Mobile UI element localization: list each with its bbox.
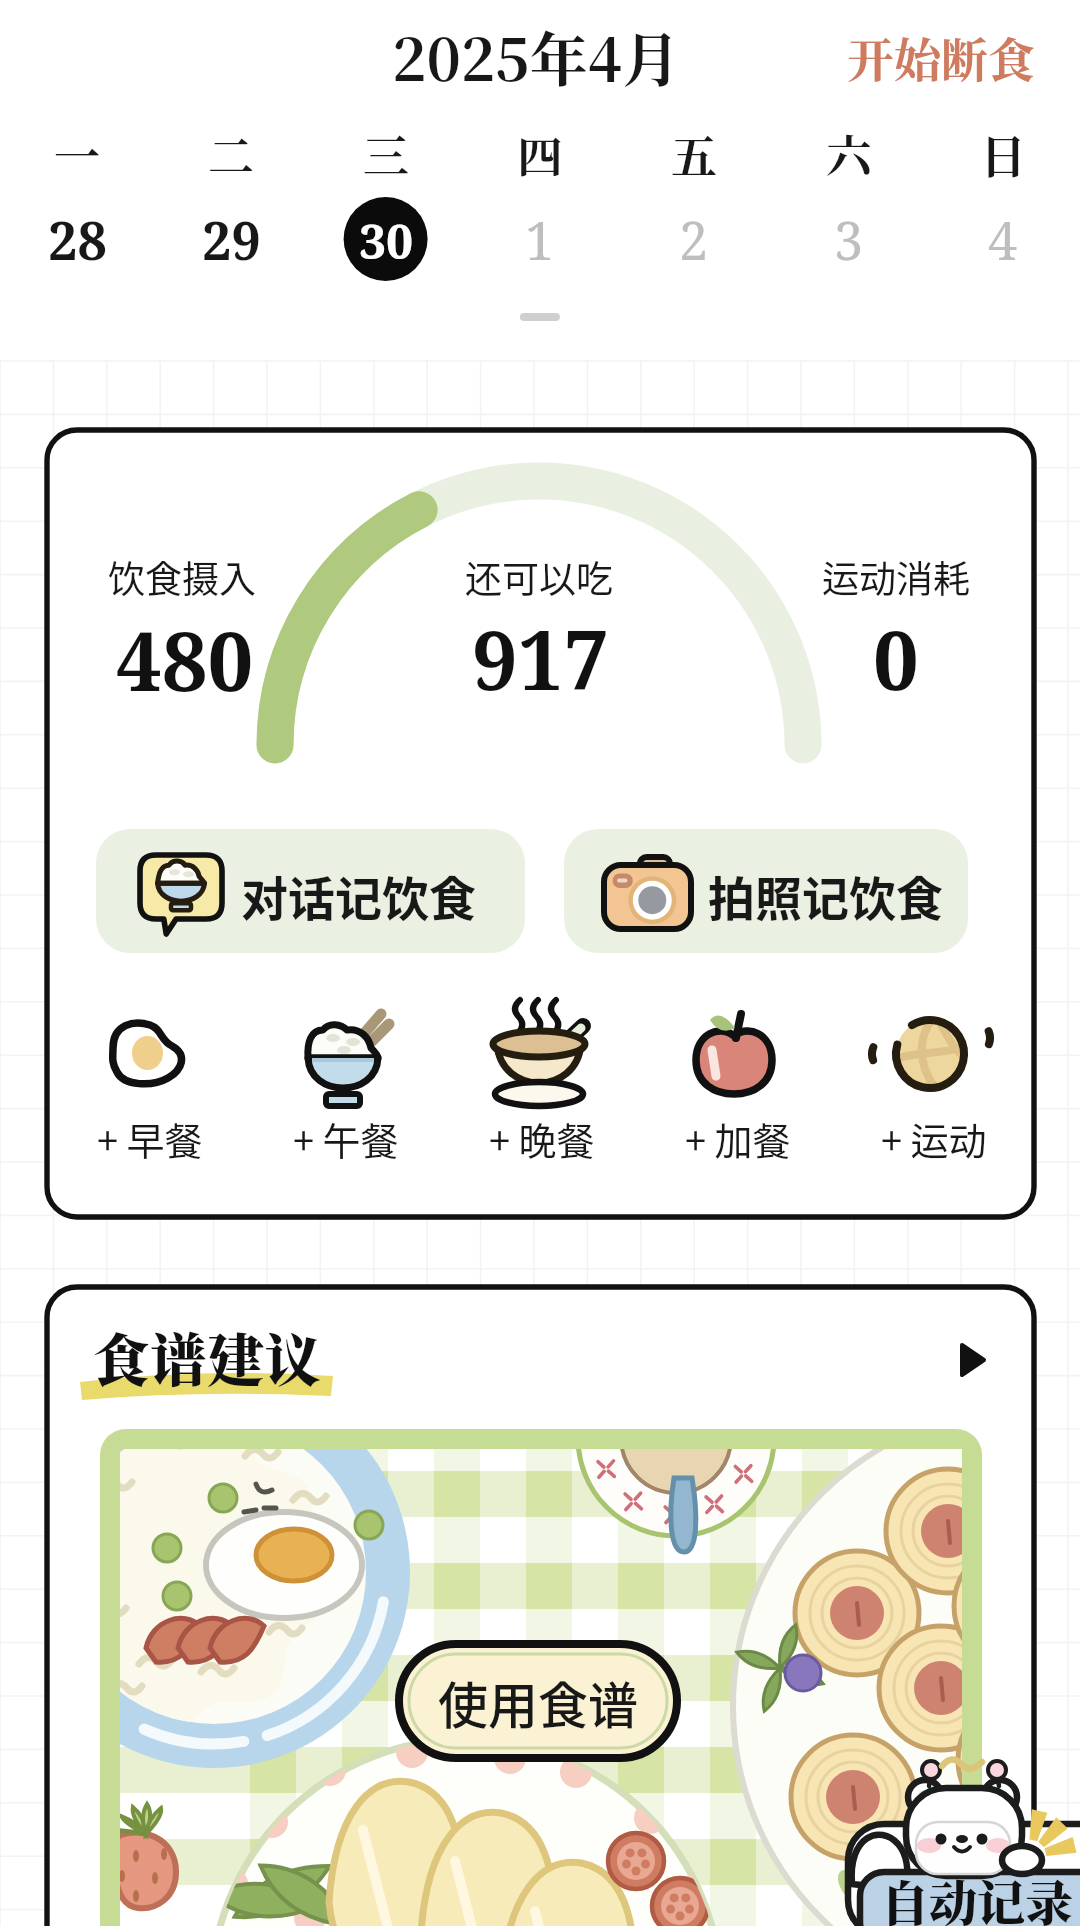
button[interactable]: 4 [953, 190, 1053, 290]
staticText: 五 [671, 120, 717, 186]
staticText: 2 [679, 204, 709, 275]
staticText: 0 [873, 603, 919, 713]
button[interactable]: 3 [799, 190, 899, 290]
button[interactable]: 28 [27, 190, 127, 290]
staticText: 使用食谱 [438, 1666, 638, 1738]
staticText: 食谱建议 [93, 1315, 321, 1397]
button[interactable]: 开始断食 [836, 14, 1046, 104]
staticText: 4 [988, 204, 1018, 275]
staticText: + 运动 [881, 1111, 987, 1166]
staticText: + 早餐 [97, 1111, 203, 1166]
staticText: 一 [54, 120, 100, 186]
staticText: 二 [208, 120, 254, 186]
button[interactable]: 1 [490, 190, 590, 290]
staticText: 日 [980, 120, 1026, 186]
staticText: 自动记录 [881, 1866, 1074, 1926]
button[interactable]: 29 [181, 190, 281, 290]
staticText: 30 [359, 208, 414, 273]
staticText: 运动消耗 [822, 550, 970, 604]
staticText: 29 [202, 204, 261, 275]
button[interactable]: 使用食谱 [399, 1644, 677, 1758]
staticText: 1 [525, 204, 555, 275]
button[interactable]: + 午餐 [254, 1010, 438, 1180]
staticText: 917 [472, 603, 610, 713]
staticText: 四 [517, 120, 563, 186]
staticText: 开始断食 [847, 23, 1035, 91]
button[interactable]: 拍照记饮食 [564, 829, 968, 953]
staticText: 28 [48, 204, 107, 275]
staticText: 3 [834, 204, 864, 275]
button[interactable]: 对话记饮食 [96, 829, 525, 953]
staticText: 还可以吃 [465, 550, 613, 604]
staticText: 2025年4月 [392, 14, 681, 97]
button[interactable]: 30 [336, 190, 436, 290]
staticText: 六 [826, 120, 872, 186]
button[interactable]: + 早餐 [58, 1010, 242, 1180]
staticText: 拍照记饮食 [708, 861, 943, 929]
button[interactable]: 更多食谱 More recipes [930, 1320, 1010, 1400]
button[interactable]: + 运动 [842, 1010, 1026, 1180]
staticText: + 晚餐 [489, 1111, 595, 1166]
staticText: + 午餐 [293, 1111, 399, 1166]
button[interactable]: 2 [644, 190, 744, 290]
button[interactable]: + 晚餐 [450, 1010, 634, 1180]
button[interactable]: + 加餐 [646, 1010, 830, 1180]
staticText: + 加餐 [685, 1111, 791, 1166]
staticText: 对话记饮食 [241, 861, 476, 929]
staticText: 饮食摄入 [108, 550, 256, 604]
staticText: 480 [116, 604, 254, 714]
staticText: 三 [363, 120, 409, 186]
